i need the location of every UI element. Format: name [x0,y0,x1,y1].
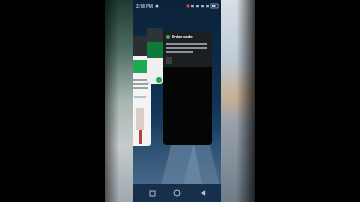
button[interactable]: Back [196,186,210,200]
staticText: 2:18 PM [136,3,153,9]
button[interactable]: Enter code [163,31,212,145]
button[interactable]: Home [170,186,184,200]
button[interactable] [147,28,163,84]
button[interactable]: Recents [145,186,159,200]
staticText: Enter code [172,34,193,39]
button[interactable] [129,36,151,146]
